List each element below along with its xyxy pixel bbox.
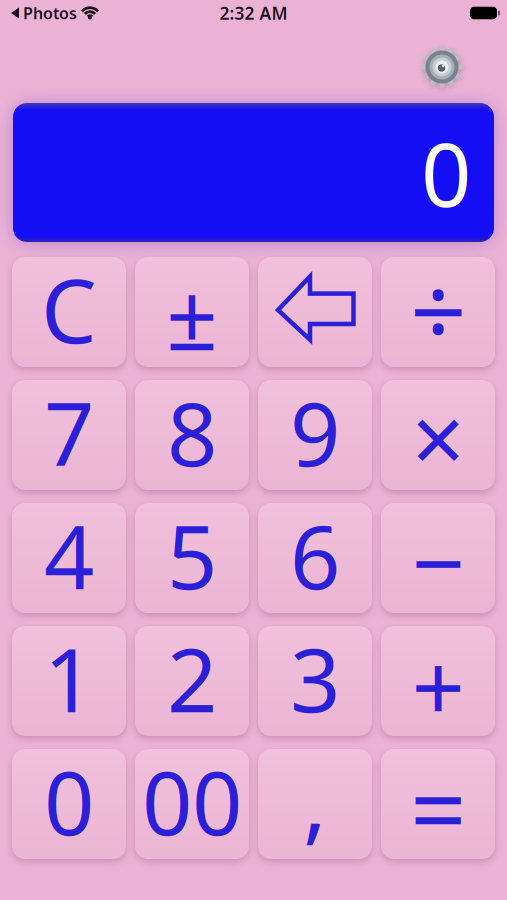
- staticText: −: [411, 499, 464, 623]
- staticText: 0: [44, 743, 94, 859]
- button[interactable]: 2: [135, 626, 249, 736]
- button[interactable]: C: [12, 257, 126, 367]
- staticText: 8: [167, 374, 217, 490]
- button[interactable]: ×: [381, 380, 495, 490]
- staticText: ,: [303, 742, 327, 858]
- button[interactable]: 00: [135, 749, 249, 859]
- button[interactable]: 5: [135, 503, 249, 613]
- button[interactable]: Back to Photos: [11, 2, 99, 24]
- button[interactable]: 0: [12, 749, 126, 859]
- staticText: ±: [166, 255, 218, 375]
- button[interactable]: 6: [258, 503, 372, 613]
- staticText: 2:32 AM: [219, 1, 287, 24]
- staticText: C: [41, 251, 97, 367]
- staticText: =: [410, 741, 466, 872]
- staticText: Photos: [23, 2, 77, 24]
- staticText: 3: [290, 620, 340, 736]
- button[interactable]: 7: [12, 380, 126, 490]
- button[interactable]: Backspace: [258, 257, 372, 367]
- staticText: 00: [142, 743, 242, 859]
- button[interactable]: ±: [135, 257, 249, 367]
- staticText: ×: [411, 375, 464, 499]
- staticText: 7: [44, 374, 94, 490]
- button[interactable]: 8: [135, 380, 249, 490]
- button[interactable]: ÷: [381, 257, 495, 367]
- staticText: ÷: [410, 243, 466, 374]
- button[interactable]: 1: [12, 626, 126, 736]
- button[interactable]: ,: [258, 749, 372, 859]
- button[interactable]: −: [381, 503, 495, 613]
- staticText: 2: [167, 620, 217, 736]
- staticText: 1: [44, 620, 94, 736]
- staticText: 6: [290, 497, 340, 613]
- button[interactable]: 3: [258, 626, 372, 736]
- staticText: 5: [167, 497, 217, 613]
- button[interactable]: 4: [12, 503, 126, 613]
- button[interactable]: +: [381, 626, 495, 736]
- button[interactable]: 9: [258, 380, 372, 490]
- staticText: 4: [44, 497, 94, 613]
- staticText: +: [411, 623, 464, 747]
- staticText: 9: [290, 374, 340, 490]
- staticText: 0: [421, 114, 471, 231]
- button[interactable]: =: [381, 749, 495, 859]
- button[interactable]: Settings: [421, 46, 463, 88]
